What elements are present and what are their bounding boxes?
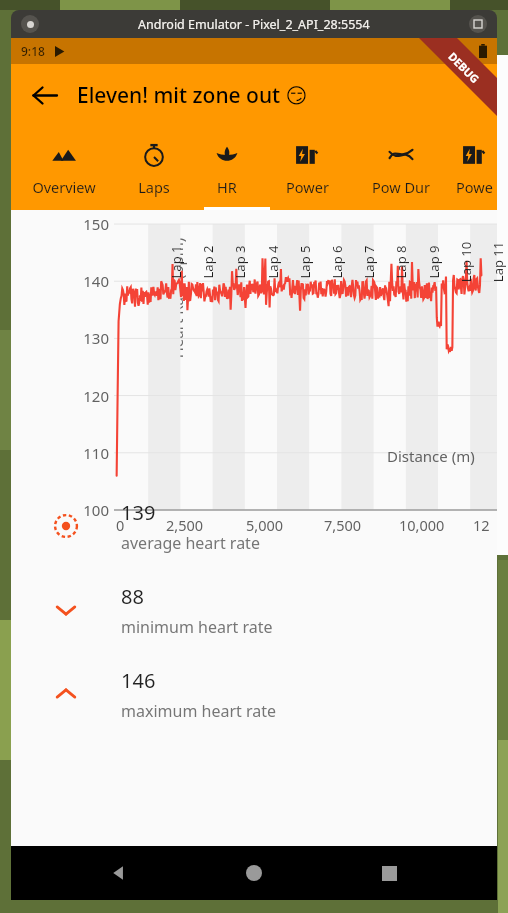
staticText: Lap 8 xyxy=(392,232,410,292)
staticText: Lap 2 xyxy=(199,232,217,292)
staticText: 100 xyxy=(69,500,109,520)
staticText: 12 xyxy=(473,515,490,535)
button[interactable]: HR xyxy=(191,126,263,210)
staticText: Powe xyxy=(456,177,493,197)
staticText: Lap 3 xyxy=(231,232,249,292)
staticText: maximum heart rate xyxy=(121,700,276,722)
button[interactable]: Home xyxy=(227,846,281,900)
button[interactable]: Pow Dur xyxy=(351,126,451,210)
button[interactable]: Window menu xyxy=(21,15,39,33)
staticText: Eleven! mit zone out 😏 xyxy=(77,81,308,110)
staticText: HR xyxy=(217,177,237,197)
staticText: Lap 4 xyxy=(264,232,282,292)
staticText: 150 xyxy=(69,214,109,234)
staticText: 120 xyxy=(69,386,109,406)
staticText: Pow Dur xyxy=(372,177,430,197)
staticText: average heart rate xyxy=(121,532,260,554)
button[interactable]: 146 xyxy=(11,652,497,736)
staticText: Lap 1 xyxy=(167,232,185,292)
button[interactable]: 139 xyxy=(11,484,497,568)
staticText: Laps xyxy=(138,177,170,197)
button[interactable]: Recents xyxy=(362,846,416,900)
staticText: Distance (m) xyxy=(387,446,475,466)
staticText: Android Emulator - Pixel_2_API_28:5554 xyxy=(138,16,370,33)
staticText: 140 xyxy=(69,271,109,291)
staticText: Lap 5 xyxy=(296,232,314,292)
button[interactable]: Overview xyxy=(11,126,116,210)
staticText: DEBUG xyxy=(445,49,483,86)
staticText: 110 xyxy=(69,443,109,463)
staticText: Lap 7 xyxy=(360,232,378,292)
staticText: Lap 6 xyxy=(328,232,346,292)
staticText: 9:18 xyxy=(21,43,45,59)
staticText: 5,000 xyxy=(246,515,284,535)
button[interactable]: Back xyxy=(21,72,67,118)
button[interactable]: 88 xyxy=(11,568,497,652)
staticText: 2,500 xyxy=(166,515,204,535)
staticText: Heart Rate (bpm) xyxy=(167,218,187,378)
staticText: Overview xyxy=(32,177,96,197)
staticText: Lap 11 xyxy=(489,232,507,292)
button[interactable]: Close xyxy=(469,15,487,33)
staticText: 130 xyxy=(69,328,109,348)
button[interactable]: Power xyxy=(263,126,351,210)
staticText: Lap 9 xyxy=(425,232,443,292)
staticText: 88 xyxy=(121,583,144,610)
staticText: 139 xyxy=(121,499,156,526)
button[interactable]: Laps xyxy=(116,126,191,210)
button[interactable]: Powe xyxy=(451,126,497,210)
staticText: Power xyxy=(286,177,329,197)
staticText: 0 xyxy=(116,515,125,535)
staticText: minimum heart rate xyxy=(121,616,273,638)
staticText: Lap 10 xyxy=(457,232,475,292)
staticText: 10,000 xyxy=(399,515,445,535)
staticText: 7,500 xyxy=(324,515,362,535)
staticText: 146 xyxy=(121,667,156,694)
button[interactable]: Back xyxy=(92,846,146,900)
